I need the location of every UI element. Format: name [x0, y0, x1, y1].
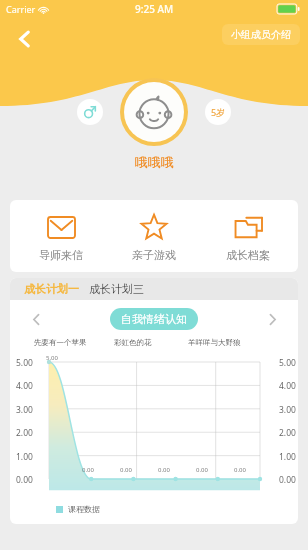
button[interactable]: 亲子游戏	[111, 207, 197, 266]
staticText: 0.00	[16, 474, 33, 486]
staticText: 5岁	[211, 106, 226, 118]
staticText: 2.00	[279, 427, 296, 439]
staticText: 3.00	[279, 404, 296, 416]
staticText: 5.00	[16, 357, 33, 369]
button[interactable]: 自我情绪认知	[110, 308, 198, 330]
staticText: 课程数据	[68, 504, 100, 514]
staticText: 小组成员介绍	[231, 28, 291, 41]
staticText: 4.00	[16, 380, 33, 392]
staticText: 0.00	[234, 466, 246, 474]
staticText: 哦哦哦	[135, 154, 174, 170]
staticText: 0.00	[120, 466, 132, 474]
button[interactable]: 导师来信	[18, 207, 104, 266]
staticText: 成长计划一	[24, 282, 79, 296]
button[interactable]: Child avatar	[120, 78, 188, 146]
button[interactable]: 成长档案	[205, 207, 291, 266]
button[interactable]: Next	[260, 307, 284, 331]
staticText: 4.00	[279, 380, 296, 392]
staticText: 0.00	[279, 474, 296, 486]
button[interactable]: 小组成员介绍	[222, 24, 300, 45]
staticText: 导师来信	[39, 248, 83, 262]
staticText: 彩虹色的花	[114, 338, 152, 347]
staticText: 5.00	[46, 354, 58, 362]
staticText: 3.00	[16, 404, 33, 416]
staticText: 2.00	[16, 427, 33, 439]
button[interactable]: 成长计划三	[89, 282, 144, 296]
staticText: Carrier	[6, 3, 36, 15]
staticText: 亲子游戏	[132, 248, 176, 262]
staticText: 成长计划三	[89, 282, 144, 296]
staticText: 羊咩咩与大野狼	[188, 338, 241, 347]
staticText: 0.00	[82, 466, 94, 474]
button[interactable]: Previous	[24, 307, 48, 331]
staticText: 0.00	[158, 466, 170, 474]
staticText: 成长档案	[226, 248, 270, 262]
staticText: 1.00	[16, 451, 33, 463]
staticText: 5.00	[279, 357, 296, 369]
button[interactable]: Back	[8, 22, 42, 56]
staticText: 先要有一个苹果	[34, 338, 87, 347]
staticText: 自我情绪认知	[121, 312, 187, 326]
staticText: 1.00	[279, 451, 296, 463]
staticText: 0.00	[196, 466, 208, 474]
button[interactable]: Gender male	[77, 99, 103, 125]
button[interactable]: 成长计划一	[24, 282, 89, 296]
staticText: 9:25 AM	[135, 2, 174, 16]
